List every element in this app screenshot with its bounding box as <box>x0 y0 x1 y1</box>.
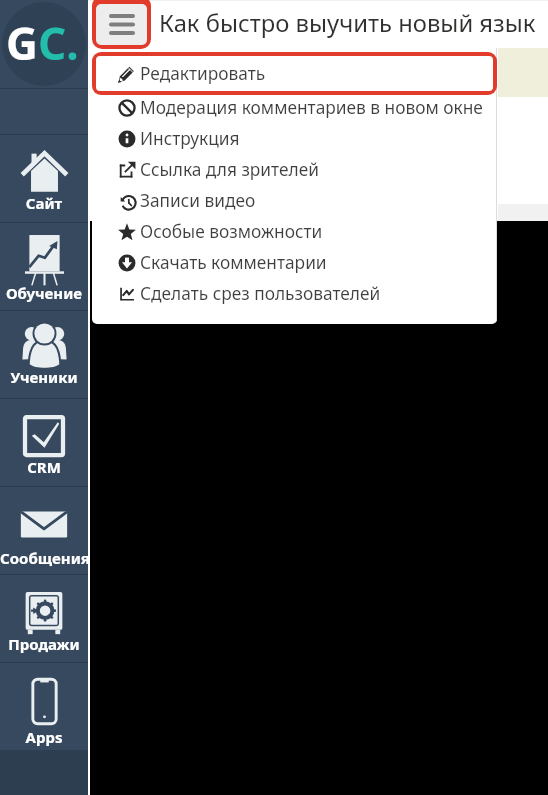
button[interactable]: Обучение <box>0 223 88 310</box>
staticText: Особые возможности <box>140 220 323 244</box>
staticText: C. <box>38 13 79 73</box>
staticText: Обучение <box>0 283 88 303</box>
staticText: Инструкция <box>140 127 240 151</box>
staticText: Ссылка для зрителей <box>140 158 319 182</box>
staticText: Редактировать <box>140 62 266 86</box>
button[interactable]: Apps <box>0 663 88 750</box>
staticText: Записи видео <box>140 189 256 213</box>
staticText: Сайт <box>0 193 88 213</box>
staticText: Apps <box>0 727 88 747</box>
button[interactable]: Особые возможности <box>92 216 497 247</box>
button[interactable]: Записи видео <box>92 185 497 216</box>
staticText: Как быстро выучить новый язык <box>159 7 536 39</box>
button[interactable]: Скачать комментарии <box>92 247 497 278</box>
staticText: Модерация комментариев в новом окне <box>140 96 483 120</box>
button[interactable]: GetCourse logo <box>0 0 88 88</box>
button[interactable]: Ученики <box>0 311 88 398</box>
staticText: Скачать комментарии <box>140 251 327 275</box>
button[interactable]: Продажи <box>0 575 88 662</box>
button[interactable]: Ссылка для зрителей <box>92 154 497 185</box>
staticText: Сделать срез пользователей <box>140 282 381 306</box>
button[interactable]: Open menu <box>96 4 147 45</box>
staticText: CRM <box>0 457 88 477</box>
button[interactable]: Модерация комментариев в новом окне <box>92 92 497 123</box>
staticText: Ученики <box>0 367 88 387</box>
button[interactable]: Сайт <box>0 135 88 222</box>
button[interactable]: Редактировать <box>92 61 497 92</box>
button[interactable]: Сообщения <box>0 487 88 574</box>
button[interactable]: Сделать срез пользователей <box>92 278 497 309</box>
staticText: Сообщения <box>0 548 88 568</box>
button[interactable]: CRM <box>0 399 88 486</box>
staticText: G <box>6 13 38 73</box>
button[interactable]: Редактировать <box>96 56 493 91</box>
staticText: Продажи <box>0 634 88 654</box>
button[interactable]: Инструкция <box>92 123 497 154</box>
staticText: Редактировать <box>140 65 266 89</box>
